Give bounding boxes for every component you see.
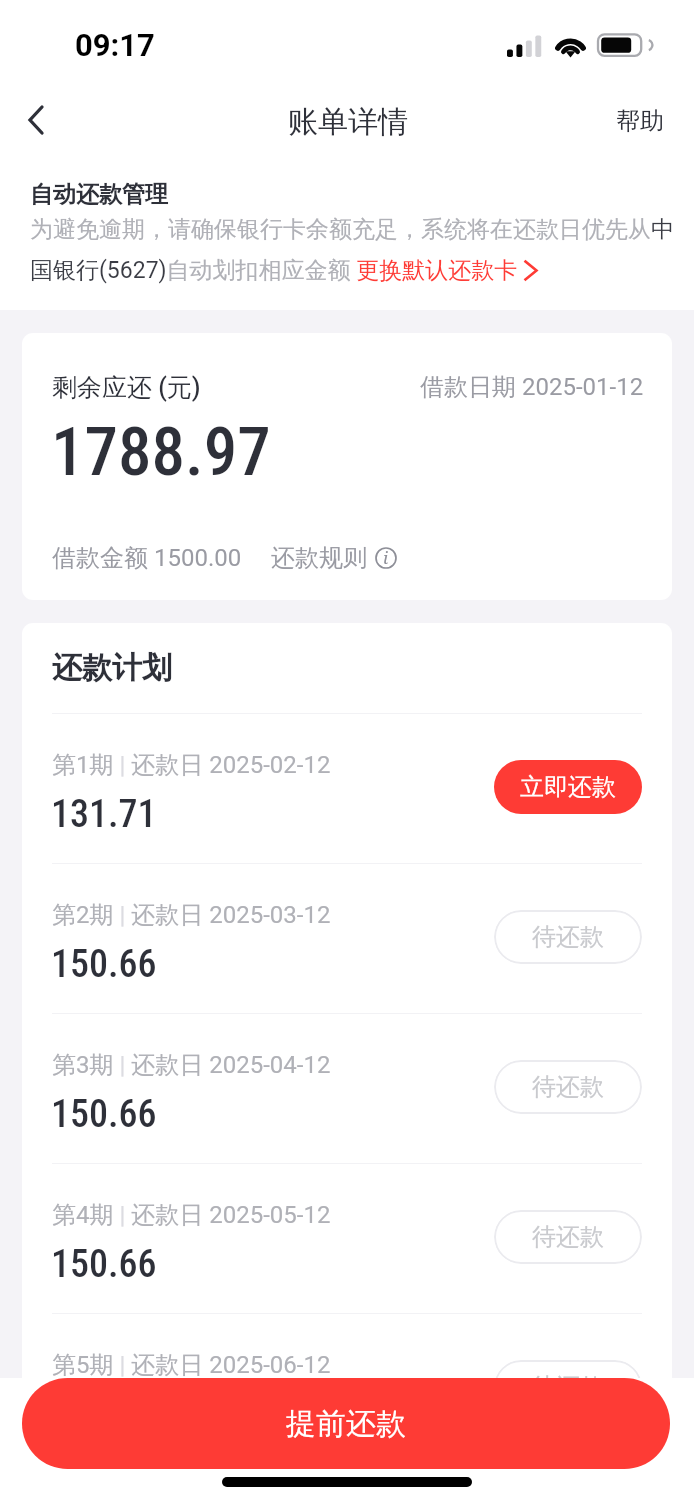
staticText: 1788.97 — [51, 413, 271, 492]
staticText: 还款规则 — [271, 543, 367, 573]
button[interactable]: 第4期 | 还款日 2025-05-12 — [22, 1164, 672, 1313]
button[interactable]: 第5期 | 还款日 2025-06-12 — [22, 1314, 672, 1463]
staticText: 150.66 — [51, 1242, 157, 1287]
staticText: 为避免逾期，请确保银行卡余额充足，系统将在还款日优先从中国银行(5627)自动划… — [30, 215, 694, 285]
button[interactable]: 立即还款 — [494, 760, 642, 814]
staticText: 第4期 | 还款日 2025-05-12 — [52, 1200, 331, 1230]
button[interactable]: 帮助 — [604, 93, 676, 148]
staticText: 150.66 — [51, 942, 157, 987]
button[interactable]: 待还款 — [494, 910, 642, 964]
button[interactable]: 待还款 — [494, 1360, 642, 1414]
staticText: 150.66 — [51, 1092, 157, 1137]
button[interactable]: 还款规则 — [271, 543, 397, 573]
staticText: 第2期 | 还款日 2025-03-12 — [52, 900, 331, 930]
staticText: 借款金额 1500.00 — [52, 543, 242, 573]
staticText: 待还款 — [532, 922, 604, 952]
staticText: 帮助 — [616, 106, 664, 136]
staticText: 借款日期 2025-01-12 — [420, 372, 644, 402]
staticText: 第1期 | 还款日 2025-02-12 — [52, 750, 331, 780]
staticText: 立即还款 — [520, 772, 616, 802]
staticText: i — [383, 546, 389, 568]
button[interactable]: 剩余应还 (元) — [22, 333, 672, 600]
button[interactable]: 第3期 | 还款日 2025-04-12 — [22, 1014, 672, 1163]
button[interactable]: 提前还款 — [22, 1378, 670, 1469]
staticText: 待还款 — [532, 1222, 604, 1252]
staticText: 提前还款 — [286, 1405, 406, 1443]
staticText: 账单详情 — [288, 103, 408, 141]
button[interactable]: Back — [6, 86, 66, 154]
staticText: 131.71 — [51, 792, 157, 837]
button[interactable]: 更换默认还款卡 — [524, 260, 538, 281]
staticText: 第3期 | 还款日 2025-04-12 — [52, 1050, 331, 1080]
staticText: 第5期 | 还款日 2025-06-12 — [52, 1350, 331, 1380]
staticText: 09:17 — [75, 27, 155, 63]
button[interactable]: 第2期 | 还款日 2025-03-12 — [22, 864, 672, 1013]
staticText: 待还款 — [532, 1372, 604, 1402]
staticText: 剩余应还 (元) — [52, 372, 201, 403]
button[interactable]: 待还款 — [494, 1060, 642, 1114]
staticText: 还款计划 — [52, 649, 172, 687]
button[interactable]: 待还款 — [494, 1210, 642, 1264]
staticText: 待还款 — [532, 1072, 604, 1102]
staticText: 自动还款管理 — [30, 180, 168, 209]
button[interactable]: 第6期 | 还款日 2025-07-12 — [22, 1464, 672, 1500]
button[interactable]: 第1期 | 还款日 2025-02-12 — [22, 714, 672, 863]
